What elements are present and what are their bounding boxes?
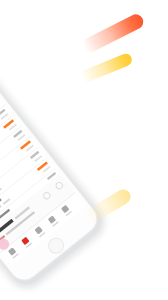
other: App promo artwork	[0, 0, 168, 300]
